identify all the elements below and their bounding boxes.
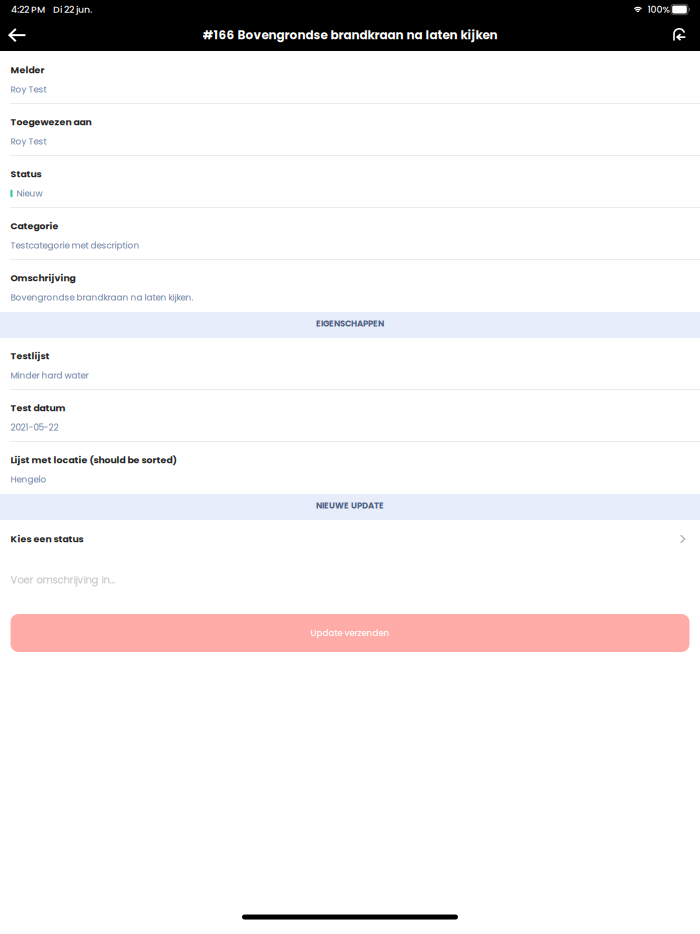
staticText: Update verzenden [310,627,389,639]
button[interactable]: Kies een status [0,520,700,558]
staticText: EIGENSCHAPPEN [316,318,384,329]
staticText: Roy Test [10,83,46,95]
staticText: Voer omschrijving in... [10,573,115,587]
staticText: Kies een status [10,532,83,546]
staticText: Test datum [10,401,65,415]
staticText: Testcategorie met description [10,239,139,251]
button[interactable]: Undo [673,21,700,49]
button[interactable]: Back [0,21,47,49]
staticText: Toegewezen aan [10,115,91,129]
staticText: NIEUWE UPDATE [316,500,384,511]
staticText: Bovengrondse brandkraan na laten kijken. [10,291,193,303]
staticText: Melder [10,63,44,77]
staticText: 4:22 PM [11,3,45,16]
staticText: 2021-05-22 [10,421,58,433]
staticText: Testlijst [10,349,49,363]
staticText: Hengelo [10,473,46,485]
staticText: #166 Bovengrondse brandkraan na laten ki… [202,27,497,43]
staticText: Nieuw [16,187,42,199]
staticText: Di 22 jun. [53,3,92,16]
staticText: Minder hard water [10,369,88,381]
staticText: Lijst met locatie (should be sorted) [10,453,176,467]
staticText: Categorie [10,219,58,233]
staticText: Omschrijving [10,271,75,285]
staticText: 100% [647,3,669,16]
staticText: Status [10,167,41,181]
staticText: Roy Test [10,135,46,147]
button[interactable]: Update verzenden [0,614,700,652]
